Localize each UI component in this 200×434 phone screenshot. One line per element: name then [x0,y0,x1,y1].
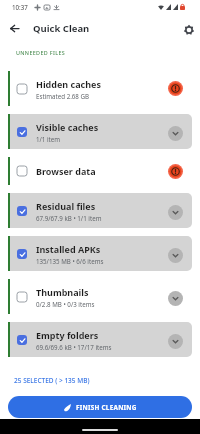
staticText: 69.6/69.6 kB • 17/17 items [36,343,112,351]
button[interactable]: Expand [168,248,183,263]
button[interactable]: Empty folders [10,322,192,357]
button[interactable]: Hidden caches [10,71,192,106]
button[interactable]: Expand [168,334,183,349]
staticText: Estimated 2.68 GB [36,92,90,100]
staticText: Empty folders [36,329,99,341]
button[interactable]: FINISH CLEANING [8,396,192,418]
staticText: 67.9/67.9 kB • 1/1 item [36,214,102,222]
button[interactable]: Expand [168,205,183,220]
staticText: 10:37 [12,3,28,11]
staticText: FINISH CLEANING [76,403,137,412]
staticText: Quick Clean [33,22,90,35]
button[interactable]: Thumbnails [10,279,192,314]
staticText: 1/1 item [36,135,61,143]
button[interactable]: Installed APKs [10,236,192,271]
button[interactable]: Warning [168,81,183,96]
button[interactable]: Browser data [10,157,192,185]
staticText: 0/2.8 MB • 0/3 items [36,300,95,308]
staticText: UNNEEDED FILES [16,49,66,56]
staticText: 25 SELECTED ( > 135 MB) [14,376,90,385]
staticText: 135/135 MB • 6/6 items [36,257,104,265]
staticText: Installed APKs [36,243,101,255]
button[interactable]: Back [4,18,24,38]
button[interactable]: Expand [168,126,183,141]
staticText: Visible caches [36,121,99,133]
button[interactable]: Visible caches [10,114,192,149]
staticText: Residual files [36,200,96,212]
staticText: Browser data [36,165,96,177]
button[interactable]: Expand [168,291,183,306]
staticText: Thumbnails [36,286,89,298]
staticText: Hidden caches [36,78,101,90]
button[interactable]: Warning [168,164,183,179]
button[interactable]: Settings [176,17,198,39]
button[interactable]: Residual files [10,193,192,228]
